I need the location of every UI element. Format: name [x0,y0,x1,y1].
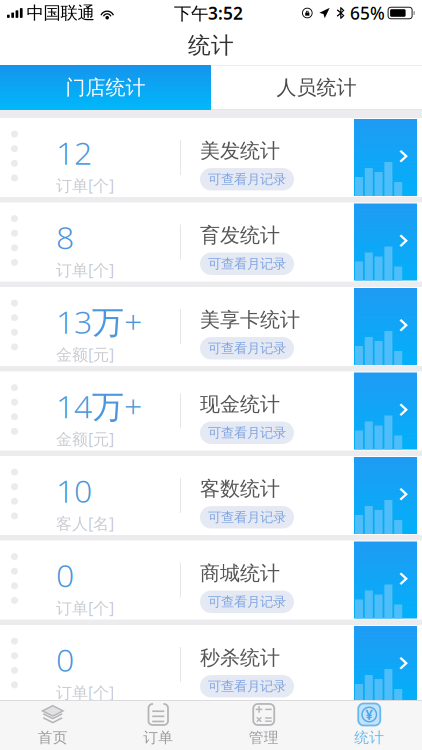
button[interactable]: 订单 [105,700,211,750]
button[interactable]: 门店统计 [0,65,211,110]
staticText: 美发统计 [200,138,280,163]
button[interactable]: 10 [0,456,422,535]
staticText: 统计 [354,728,384,746]
staticText: 下午3:52 [174,1,243,24]
staticText: 65% [350,1,385,24]
button[interactable]: 人员统计 [211,65,422,110]
staticText: 现金统计 [200,392,280,417]
staticText: 首页 [38,728,68,746]
staticText: 订单 [143,728,173,746]
staticText: 统计 [188,32,234,59]
staticText: 可查看月记录 [208,340,286,356]
button[interactable]: 首页 [0,700,105,750]
button[interactable]: 13万+ [0,287,422,366]
button[interactable]: 管理 [211,700,316,750]
staticText: 金额[元] [56,428,114,449]
staticText: 10 [56,469,92,512]
staticText: 秒杀统计 [200,645,280,670]
staticText: 商城统计 [200,561,280,586]
staticText: 13万+ [56,300,142,343]
button[interactable]: 12 [0,118,422,197]
staticText: ¥ [365,706,373,723]
staticText: 金额[元] [56,344,114,365]
staticText: 可查看月记录 [208,678,286,694]
button[interactable]: 14万+ [0,371,422,450]
staticText: 可查看月记录 [208,256,286,272]
staticText: 管理 [249,728,279,746]
staticText: 中国联通 [27,2,95,24]
staticText: 订单[个] [56,682,114,703]
staticText: 可查看月记录 [208,425,286,441]
staticText: 0 [56,554,74,596]
staticText: 8 [56,216,74,258]
staticText: 订单[个] [56,597,114,618]
staticText: 门店统计 [65,75,145,100]
staticText: 客数统计 [200,476,280,501]
button[interactable]: 0 [0,625,422,704]
staticText: 美享卡统计 [200,307,300,332]
staticText: 可查看月记录 [208,594,286,610]
staticText: 0 [56,638,74,681]
staticText: 育发统计 [200,223,280,248]
staticText: 客人[名] [56,513,114,534]
staticText: 人员统计 [276,75,356,100]
staticText: 可查看月记录 [208,171,286,187]
staticText: 12 [56,131,92,174]
button[interactable]: 0 [0,540,422,619]
button[interactable]: ¥ [316,700,422,750]
staticText: 可查看月记录 [208,509,286,525]
staticText: 订单[个] [56,259,114,280]
button[interactable]: 8 [0,202,422,281]
staticText: 14万+ [56,385,142,427]
staticText: 订单[个] [56,175,114,196]
